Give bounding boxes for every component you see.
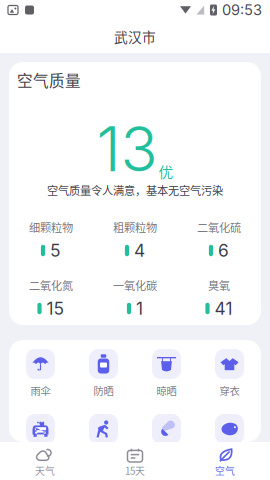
staticText: 二氧化氮 (29, 277, 73, 293)
staticText: 09:53 (222, 1, 262, 19)
staticText: 15 (47, 298, 65, 319)
staticText: 防晒 (93, 383, 113, 398)
staticText: 空气质量 (17, 69, 81, 91)
button[interactable]: 天气 (0, 448, 90, 477)
staticText: 1 (136, 298, 143, 319)
staticText: 二氧化硫 (197, 219, 241, 235)
button[interactable]: 15天 (90, 448, 180, 477)
staticText: 晾晒 (156, 383, 176, 398)
button[interactable]: 雨伞 (9, 349, 72, 396)
staticText: 空气质量令人满意，基本无空气污染 (47, 182, 223, 198)
staticText: 钓鱼 (219, 448, 239, 463)
staticText: 洗车 (30, 448, 50, 463)
button[interactable]: 空气 (180, 448, 270, 477)
staticText: 武汉市 (114, 27, 156, 46)
staticText: 6 (218, 240, 229, 261)
button[interactable]: 感冒 (135, 414, 198, 461)
button[interactable]: 运动 (72, 414, 135, 461)
staticText: 一氧化碳 (113, 277, 157, 293)
button[interactable]: 洗车 (9, 414, 72, 461)
staticText: 优 (158, 161, 173, 182)
staticText: 41 (215, 298, 233, 319)
staticText: 粗颗粒物 (113, 219, 157, 235)
staticText: 13 (96, 112, 157, 186)
staticText: 5 (50, 240, 61, 261)
staticText: 细颗粒物 (29, 219, 73, 235)
staticText: 臭氧 (208, 277, 230, 293)
button[interactable]: 钓鱼 (198, 414, 261, 461)
button[interactable]: 晾晒 (135, 349, 198, 396)
staticText: 15天 (125, 463, 145, 478)
staticText: 天气 (35, 463, 55, 478)
staticText: 空气 (215, 463, 235, 478)
staticText: 雨伞 (30, 383, 50, 398)
button[interactable]: 防晒 (72, 349, 135, 396)
button[interactable]: 穿衣 (198, 349, 261, 396)
staticText: 4 (134, 240, 145, 261)
staticText: 穿衣 (219, 383, 239, 398)
